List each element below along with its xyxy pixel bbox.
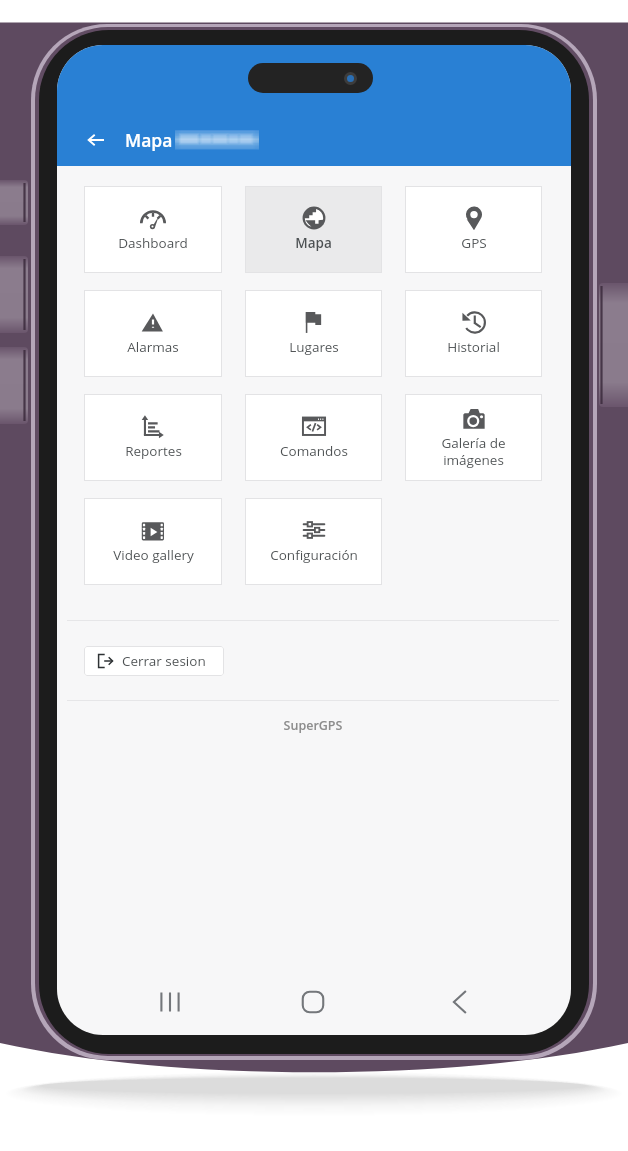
button[interactable]: Dashboard (84, 186, 222, 273)
staticText: Mapa (125, 128, 173, 152)
button[interactable]: Home (284, 979, 341, 1025)
button[interactable]: Comandos (245, 394, 382, 481)
button[interactable]: Reportes (84, 394, 222, 481)
button[interactable]: GPS (405, 186, 542, 273)
button[interactable]: Video gallery (84, 498, 222, 585)
staticText: Mapa (295, 234, 332, 252)
staticText: SuperGPS (67, 717, 559, 734)
button[interactable]: Historial (405, 290, 542, 377)
staticText: GPS (461, 234, 487, 252)
button[interactable]: Recent apps (141, 979, 198, 1025)
button[interactable]: Galería de imágenes (405, 394, 542, 481)
button[interactable]: Configuración (245, 498, 382, 585)
staticText: Video gallery (113, 546, 194, 564)
staticText: Cerrar sesion (122, 652, 206, 670)
button[interactable]: Cerrar sesion (84, 646, 224, 676)
button[interactable]: Alarmas (84, 290, 222, 377)
button[interactable]: Lugares (245, 290, 382, 377)
button[interactable]: Back (429, 979, 486, 1025)
staticText: Alarmas (127, 338, 179, 356)
staticText: Comandos (280, 442, 348, 460)
staticText: Galería de imágenes (441, 434, 506, 469)
staticText: Reportes (125, 442, 182, 460)
staticText: Dashboard (118, 234, 188, 252)
staticText: Configuración (270, 546, 358, 564)
button[interactable]: Mapa (245, 186, 382, 273)
staticText: Lugares (289, 338, 339, 356)
button[interactable]: Back (80, 124, 112, 156)
staticText: Historial (447, 338, 500, 356)
